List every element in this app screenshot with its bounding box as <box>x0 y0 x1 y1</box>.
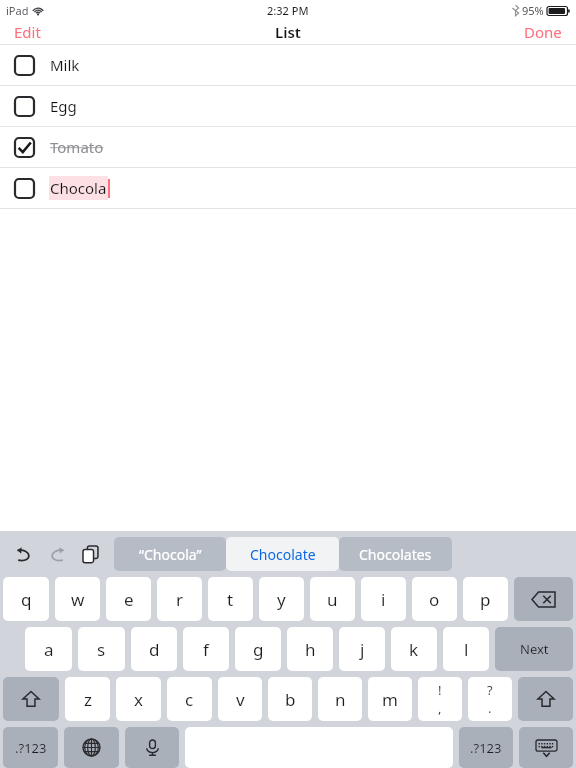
staticText: m <box>382 688 398 711</box>
staticText: “Chocola” <box>139 545 202 564</box>
staticText: s <box>97 638 106 661</box>
button[interactable]: i <box>361 577 406 621</box>
staticText: ? <box>487 681 493 699</box>
button[interactable]: Chocola <box>0 168 576 209</box>
staticText: f <box>203 638 209 661</box>
staticText: z <box>84 688 92 711</box>
staticText: e <box>124 588 134 611</box>
staticText: List <box>275 22 301 42</box>
staticText: c <box>185 688 194 711</box>
button[interactable]: n <box>318 677 362 721</box>
button[interactable]: Undo <box>6 537 40 571</box>
staticText: 2:32 PM <box>267 3 309 18</box>
button[interactable]: w <box>55 577 100 621</box>
staticText: Done <box>524 22 562 42</box>
button[interactable]: Change keyboard <box>64 727 119 768</box>
button[interactable]: c <box>167 677 212 721</box>
button[interactable]: Milk <box>0 45 576 86</box>
button[interactable]: Done <box>510 20 576 44</box>
staticText: Next <box>520 640 549 658</box>
staticText: o <box>429 588 440 611</box>
staticText: v <box>236 688 245 711</box>
button[interactable]: Chocolate <box>226 537 339 571</box>
staticText: n <box>335 688 346 711</box>
button[interactable]: y <box>259 577 304 621</box>
button[interactable] <box>14 137 35 158</box>
button[interactable]: a <box>25 627 72 671</box>
staticText: ! <box>438 681 442 699</box>
button[interactable]: l <box>443 627 489 671</box>
staticText: h <box>305 638 316 661</box>
button[interactable]: Edit <box>0 20 55 44</box>
button[interactable]: s <box>78 627 125 671</box>
staticText: a <box>44 638 54 661</box>
button[interactable]: q <box>3 577 49 621</box>
staticText: y <box>277 588 286 611</box>
staticText: p <box>480 588 491 611</box>
button[interactable]: Tomato <box>0 127 576 168</box>
button[interactable]: p <box>463 577 508 621</box>
staticText: d <box>149 638 160 661</box>
staticText: g <box>253 638 264 661</box>
button[interactable]: d <box>131 627 177 671</box>
button[interactable]: b <box>268 677 312 721</box>
button[interactable]: Hide keyboard <box>519 727 573 768</box>
button[interactable]: j <box>339 627 385 671</box>
staticText: .?123 <box>470 739 502 757</box>
button[interactable]: u <box>310 577 355 621</box>
staticText: Tomato <box>50 137 104 157</box>
button[interactable]: z <box>65 677 110 721</box>
button[interactable] <box>14 55 35 76</box>
button[interactable]: ! <box>418 677 462 721</box>
staticText: Chocolates <box>359 545 432 564</box>
button[interactable]: “Chocola” <box>114 537 226 571</box>
button[interactable] <box>14 96 35 117</box>
staticText: j <box>360 638 365 661</box>
button[interactable]: Paste <box>74 537 108 571</box>
staticText: iPad <box>6 3 29 18</box>
staticText: l <box>464 638 469 661</box>
button[interactable]: Next <box>495 627 573 671</box>
staticText: k <box>409 638 419 661</box>
button[interactable]: g <box>235 627 281 671</box>
button[interactable]: .?123 <box>459 727 513 768</box>
staticText: i <box>381 588 386 611</box>
staticText: w <box>71 588 85 611</box>
staticText: b <box>285 688 296 711</box>
staticText: Edit <box>14 22 41 42</box>
button[interactable]: .?123 <box>3 727 58 768</box>
button[interactable]: x <box>116 677 161 721</box>
staticText: , <box>438 699 442 717</box>
staticText: . <box>488 699 492 717</box>
button[interactable]: Chocolates <box>339 537 452 571</box>
button[interactable]: Egg <box>0 86 576 127</box>
staticText: q <box>21 588 32 611</box>
button[interactable]: Redo <box>40 537 74 571</box>
staticText: .?123 <box>15 739 47 757</box>
staticText: r <box>176 588 184 611</box>
button[interactable]: r <box>157 577 202 621</box>
button[interactable]: h <box>287 627 333 671</box>
staticText: t <box>227 588 234 611</box>
button[interactable]: o <box>412 577 457 621</box>
button[interactable]: Shift <box>518 677 573 721</box>
button[interactable]: v <box>218 677 262 721</box>
button[interactable]: ? <box>468 677 512 721</box>
staticText: u <box>327 588 338 611</box>
button[interactable]: m <box>368 677 412 721</box>
staticText: 95% <box>522 3 544 18</box>
staticText: Milk <box>50 55 80 75</box>
staticText: Chocola <box>50 178 107 198</box>
staticText: x <box>134 688 143 711</box>
button[interactable]: k <box>391 627 437 671</box>
button[interactable]: e <box>106 577 151 621</box>
button[interactable]: Shift <box>3 677 59 721</box>
button[interactable] <box>14 178 35 199</box>
button[interactable]: Dictation <box>125 727 179 768</box>
button[interactable]: t <box>208 577 253 621</box>
button[interactable]: Backspace <box>514 577 573 621</box>
staticText: Egg <box>50 96 77 116</box>
button[interactable]: f <box>183 627 229 671</box>
staticText: Chocolate <box>250 545 316 564</box>
